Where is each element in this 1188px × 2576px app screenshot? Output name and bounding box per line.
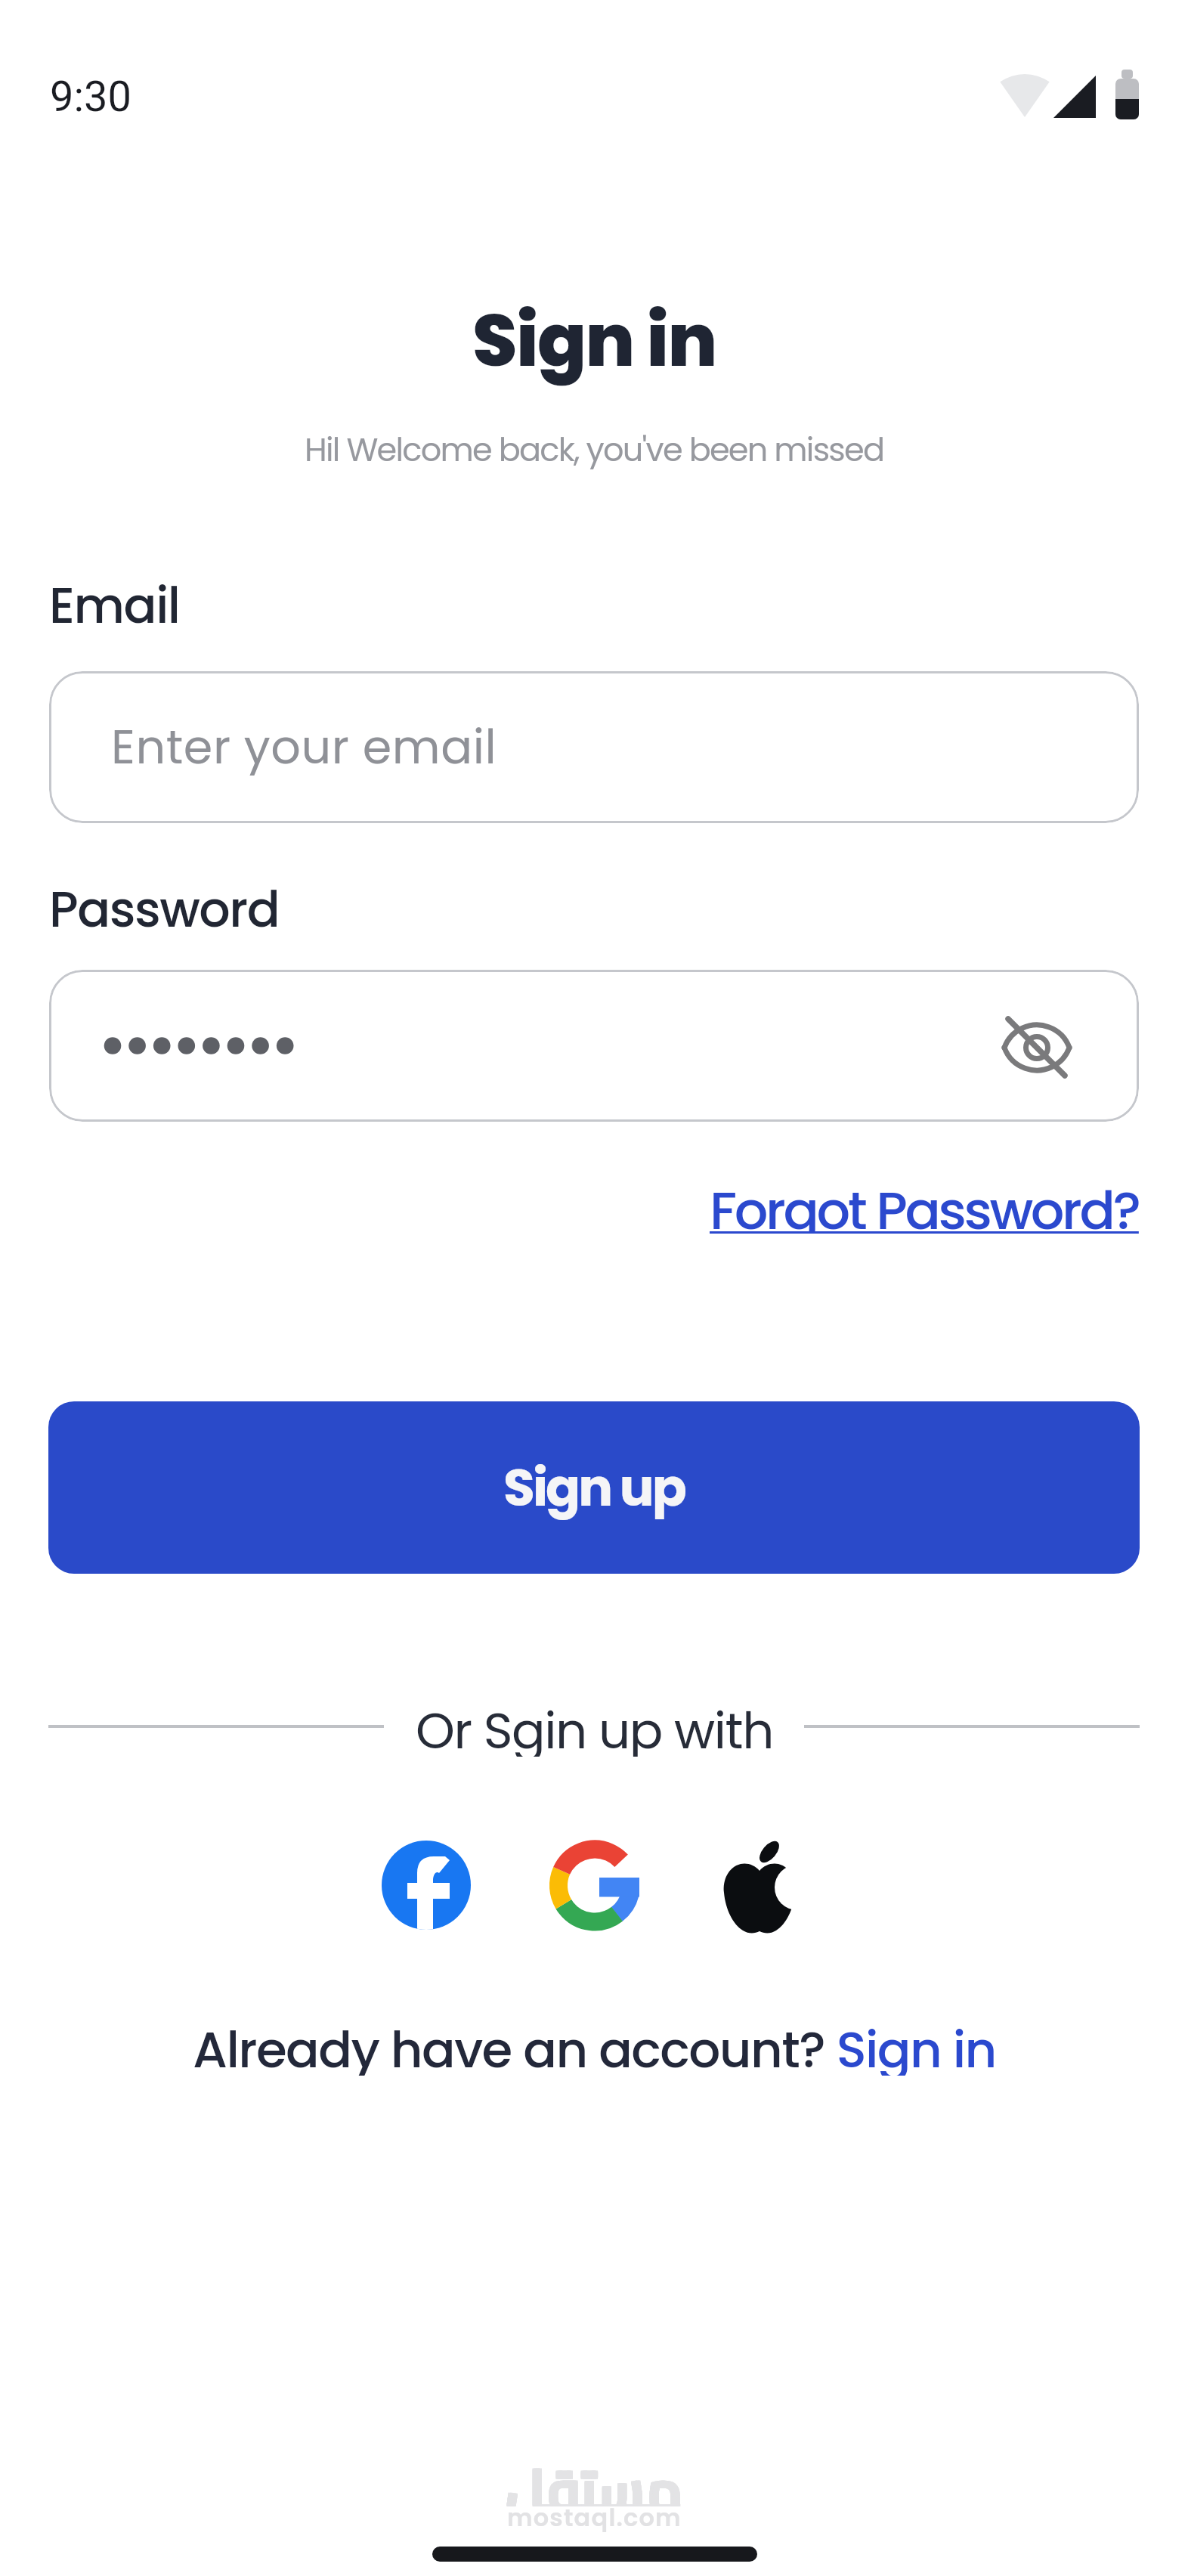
staticText: مستقل	[505, 2438, 680, 2506]
staticText: مستقل	[506, 2438, 682, 2506]
staticText: Password	[49, 875, 280, 936]
button[interactable]: Sign up	[48, 1401, 1140, 1574]
staticText: مستقل	[508, 2438, 683, 2506]
staticText: مستقل	[508, 2437, 683, 2505]
staticText: Email	[49, 571, 180, 632]
staticText: مستقل	[505, 2437, 680, 2505]
staticText: Hil Welcome back, you've been missed	[305, 427, 884, 472]
staticText: Sign up	[503, 1452, 685, 1524]
button[interactable]	[718, 1833, 809, 1939]
button[interactable]	[546, 1838, 643, 1935]
staticText: Sign in	[472, 289, 716, 391]
staticText: Enter your email	[111, 714, 497, 780]
button[interactable]: Already have an account? Sign in	[0, 2015, 1188, 2076]
staticText: مستقل	[505, 2438, 680, 2506]
staticText: Already have an account? Sign in	[193, 2015, 996, 2076]
staticText: mostaql.com	[507, 2500, 682, 2534]
staticText: مستقل	[506, 2437, 682, 2505]
button[interactable]	[432, 2547, 757, 2562]
staticText: مستقل	[506, 2438, 682, 2506]
button[interactable]: Enter your email	[49, 671, 1139, 823]
staticText: 9:30	[50, 72, 131, 122]
staticText: Or Sgin up with	[416, 1696, 773, 1757]
button[interactable]	[382, 1841, 471, 1930]
button[interactable]	[984, 995, 1090, 1101]
button[interactable]	[49, 970, 1139, 1122]
button[interactable]: Forgot Password?	[710, 1173, 1139, 1234]
staticText: مستقل	[508, 2438, 683, 2506]
